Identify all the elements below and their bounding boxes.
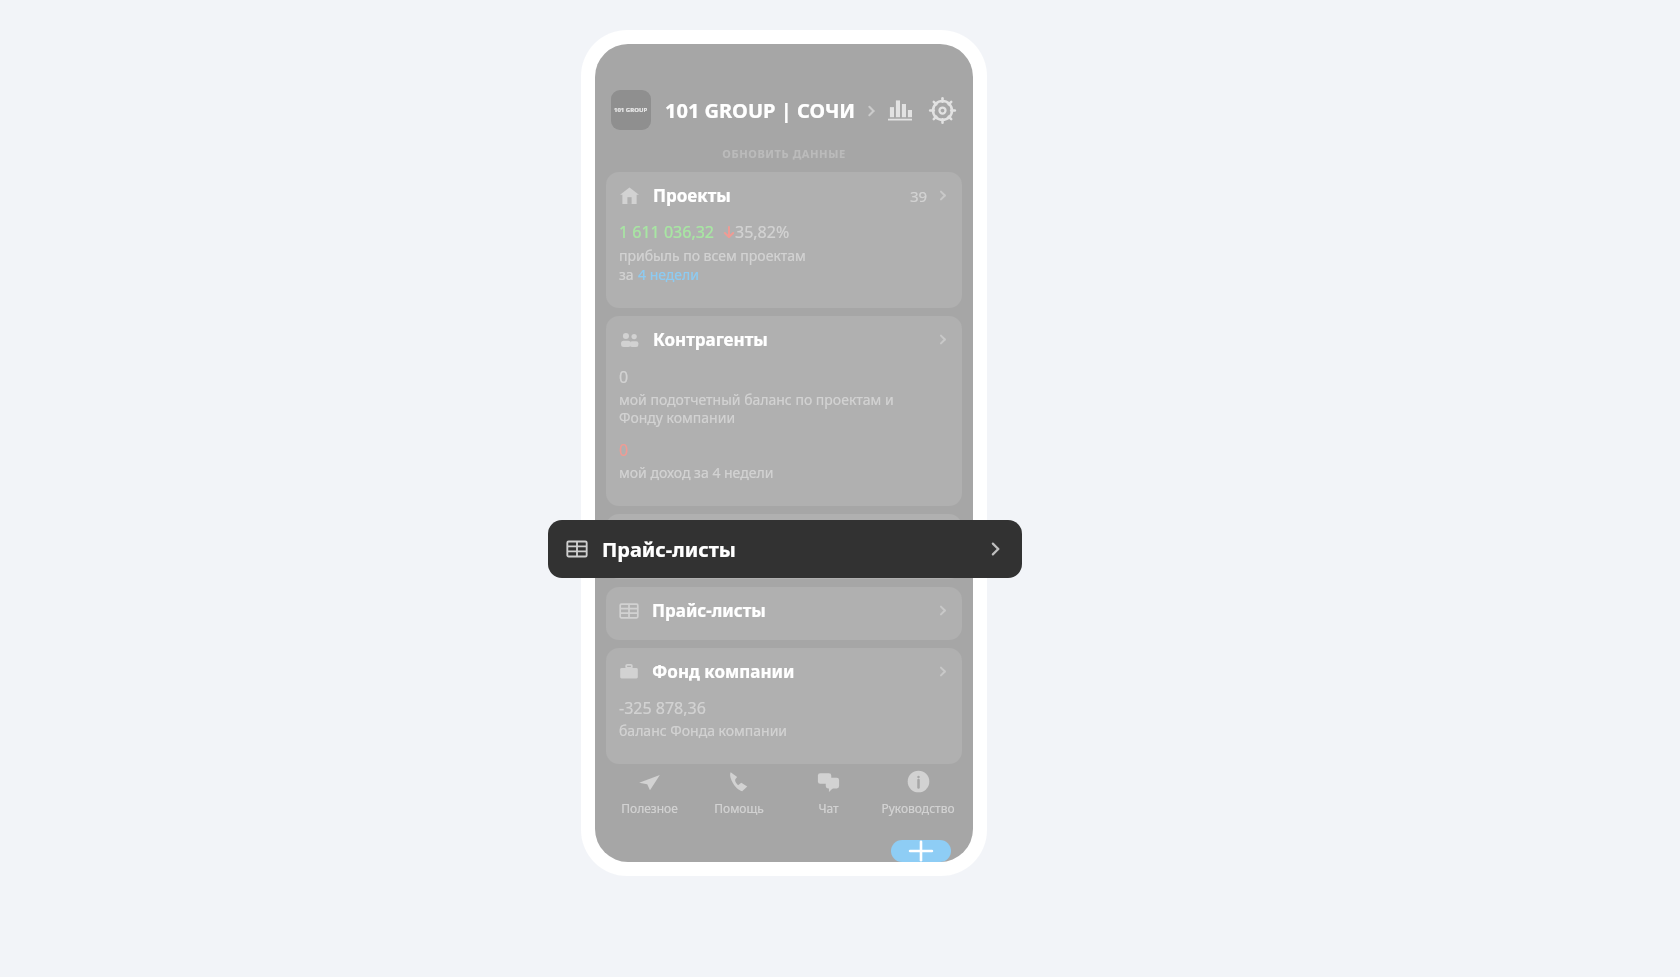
staticText: 1 611 036,32 bbox=[619, 221, 714, 243]
staticText: прибыль по всем проектам bbox=[619, 246, 806, 265]
button[interactable]: Руководство bbox=[873, 764, 963, 822]
button[interactable]: Чат bbox=[783, 764, 873, 822]
staticText: Проекты bbox=[653, 184, 731, 207]
button[interactable]: Прайс-листы bbox=[606, 587, 962, 640]
staticText: Фонд компании bbox=[652, 660, 795, 683]
staticText: Руководство bbox=[881, 800, 955, 816]
staticText: баланс Фонда компании bbox=[619, 721, 788, 740]
staticText: 0 bbox=[619, 366, 629, 388]
button[interactable]: Settings bbox=[927, 95, 957, 125]
button[interactable]: Проекты bbox=[606, 172, 962, 308]
button[interactable]: Контрагенты bbox=[606, 316, 962, 506]
staticText: Контрагенты bbox=[653, 328, 768, 351]
button[interactable]: 101 GROUP | СОЧИ bbox=[665, 97, 878, 124]
button[interactable]: ОБНОВИТЬ ДАННЫЕ bbox=[595, 146, 973, 161]
staticText: Прайс-листы bbox=[652, 599, 766, 622]
button[interactable]: Statistics bbox=[885, 95, 915, 125]
staticText: 101 GROUP | СОЧИ bbox=[665, 97, 856, 124]
button[interactable]: 4 недели bbox=[638, 265, 699, 284]
staticText: 0 bbox=[619, 439, 629, 461]
button[interactable]: Помощь bbox=[694, 764, 783, 822]
button[interactable]: История событий bbox=[606, 514, 962, 579]
button[interactable]: Фонд компании bbox=[606, 648, 962, 764]
staticText: Прайс-листы bbox=[602, 536, 736, 563]
staticText: мой доход за 4 недели bbox=[619, 463, 774, 482]
staticText: Полезное bbox=[621, 800, 678, 816]
staticText: 35,82% bbox=[735, 221, 790, 243]
staticText: 39 bbox=[910, 186, 928, 206]
staticText: мой подотчетный баланс по проектам и Фон… bbox=[619, 390, 894, 427]
staticText: 101 GROUP bbox=[614, 106, 648, 114]
staticText: Помощь bbox=[714, 800, 764, 816]
staticText: Чат bbox=[818, 800, 839, 816]
button[interactable]: Add bbox=[891, 840, 951, 862]
button[interactable]: Полезное bbox=[605, 764, 694, 822]
staticText: -325 878,36 bbox=[619, 697, 706, 719]
button[interactable]: Прайс-листы bbox=[548, 520, 1022, 578]
staticText: История событий bbox=[652, 526, 807, 549]
staticText: за bbox=[619, 265, 638, 284]
